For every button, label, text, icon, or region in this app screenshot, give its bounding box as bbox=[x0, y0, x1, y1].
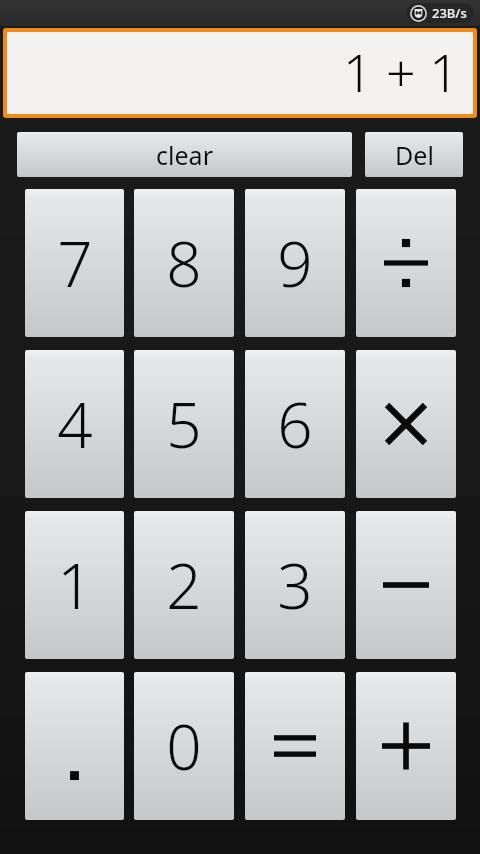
button[interactable]: Decimal point bbox=[25, 672, 124, 820]
staticText: 1 + 1 bbox=[342, 36, 459, 107]
button[interactable]: 4 bbox=[25, 350, 124, 498]
button[interactable]: 0 bbox=[134, 672, 234, 820]
staticText: 4 bbox=[57, 382, 93, 466]
button[interactable]: Del bbox=[365, 132, 463, 177]
staticText: Del bbox=[395, 138, 434, 172]
staticText: 2 bbox=[166, 543, 202, 627]
staticText: 9 bbox=[277, 221, 313, 305]
staticText: 1 bbox=[57, 543, 93, 627]
button[interactable]: 9 bbox=[245, 189, 345, 337]
button[interactable]: Equals bbox=[245, 672, 345, 820]
staticText: 5 bbox=[166, 382, 202, 466]
staticText: 3 bbox=[277, 543, 313, 627]
staticText: 8 bbox=[166, 221, 202, 305]
button[interactable]: 7 bbox=[25, 189, 124, 337]
button[interactable]: Plus bbox=[356, 672, 456, 820]
button[interactable]: 6 bbox=[245, 350, 345, 498]
button[interactable]: 3 bbox=[245, 511, 345, 659]
staticText: 0 bbox=[166, 704, 202, 788]
button[interactable]: Divide bbox=[356, 189, 456, 337]
staticText: clear bbox=[156, 138, 213, 172]
staticText: 6 bbox=[277, 382, 313, 466]
button[interactable]: 8 bbox=[134, 189, 234, 337]
staticText: 23B/s bbox=[432, 4, 467, 22]
button[interactable]: 1 + 1 bbox=[7, 32, 473, 114]
button[interactable]: 2 bbox=[134, 511, 234, 659]
button[interactable]: Multiply bbox=[356, 350, 456, 498]
button[interactable]: clear bbox=[17, 132, 352, 177]
staticText: 7 bbox=[57, 221, 93, 305]
button[interactable]: Minus bbox=[356, 511, 456, 659]
button[interactable]: 5 bbox=[134, 350, 234, 498]
button[interactable]: 1 bbox=[25, 511, 124, 659]
